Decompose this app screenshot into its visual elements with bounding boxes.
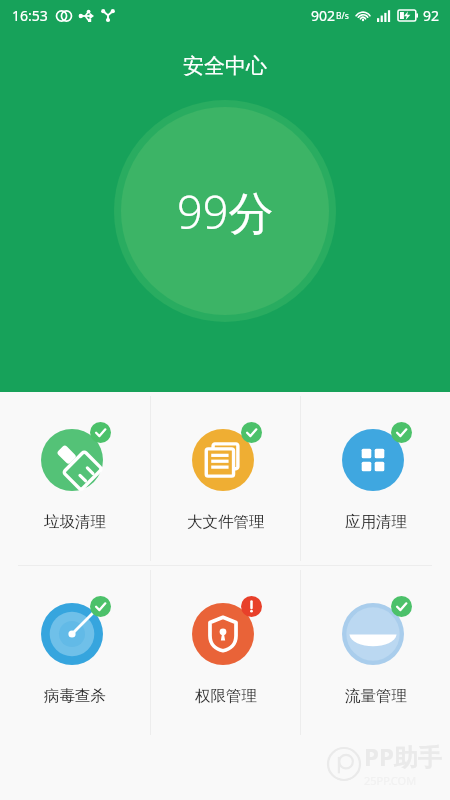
staticText: 垃圾清理 (44, 512, 106, 532)
staticText: 902 (311, 6, 336, 25)
staticText: B/s (336, 10, 349, 22)
staticText: 病毒查杀 (44, 686, 106, 706)
staticText: 16:53 (12, 6, 48, 25)
button[interactable]: 大文件管理 (151, 392, 300, 565)
button[interactable]: 流量管理 (301, 566, 450, 739)
button[interactable]: 垃圾清理 (0, 392, 150, 565)
staticText: 权限管理 (195, 686, 257, 706)
staticText: 应用清理 (345, 512, 407, 532)
staticText: 99分 (177, 181, 274, 242)
button[interactable]: 权限管理 (151, 566, 300, 739)
button[interactable]: 应用清理 (301, 392, 450, 565)
staticText: 流量管理 (345, 686, 407, 706)
staticText: 92 (423, 6, 440, 25)
button[interactable]: 病毒查杀 (0, 566, 150, 739)
staticText: 大文件管理 (187, 512, 265, 532)
staticText: 安全中心 (0, 53, 450, 79)
staticText: PP助手 (364, 740, 442, 773)
